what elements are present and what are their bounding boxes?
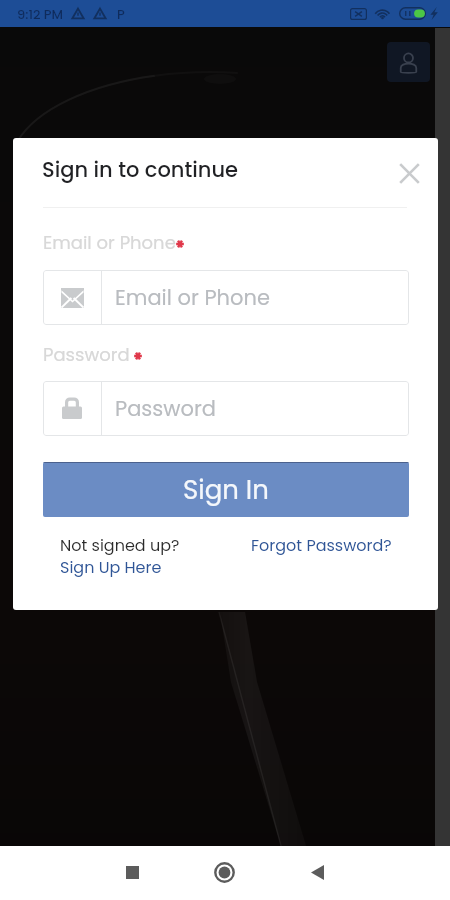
- staticText: Email or Phone: [115, 283, 270, 312]
- staticText: Sign In: [183, 472, 269, 508]
- button[interactable]: Account: [387, 42, 430, 82]
- button[interactable]: Sign Up Here: [60, 556, 162, 578]
- button[interactable]: Home: [201, 849, 248, 896]
- button[interactable]: Email or Phone: [43, 270, 409, 325]
- button[interactable]: Forgot Password?: [251, 534, 397, 556]
- button[interactable]: Password: [43, 381, 409, 436]
- staticText: 9:12 PM: [17, 5, 64, 23]
- button[interactable]: Not signed up?: [60, 534, 180, 556]
- staticText: Password: [115, 394, 216, 423]
- staticText: Sign in to continue: [42, 155, 239, 184]
- staticText: Forgot Password?: [251, 534, 392, 556]
- button[interactable]: Sign In: [43, 462, 409, 517]
- staticText: Email or Phone: [43, 230, 176, 255]
- button[interactable]: Back: [294, 849, 341, 896]
- button[interactable]: Close: [384, 148, 435, 199]
- staticText: Password: [43, 342, 130, 367]
- staticText: P: [117, 5, 125, 23]
- button[interactable]: Recents: [109, 849, 156, 896]
